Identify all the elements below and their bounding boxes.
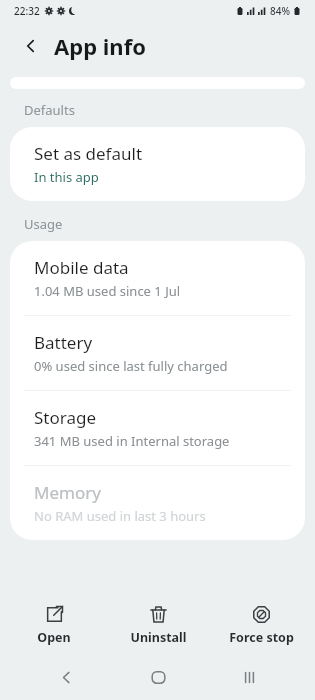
staticText: 0% used since last fully charged [34, 357, 228, 375]
staticText: In this app [34, 168, 99, 186]
staticText: 22:32 [14, 4, 40, 18]
staticText: 84% [270, 4, 290, 18]
staticText: Force stop [229, 629, 294, 646]
button[interactable]: Back [40, 654, 92, 700]
staticText: Set as default [34, 142, 143, 165]
staticText: App info [54, 31, 146, 61]
button[interactable]: Back [14, 29, 48, 63]
staticText: Defaults [24, 101, 75, 119]
button[interactable]: Memory [10, 466, 305, 540]
staticText: Mobile data [34, 256, 129, 279]
button[interactable]: Storage [10, 391, 305, 465]
button[interactable]: Force stop [211, 601, 311, 650]
staticText: Memory [34, 481, 101, 504]
button[interactable]: Home [132, 654, 184, 700]
staticText: Battery [34, 331, 93, 354]
staticText: Uninstall [130, 629, 187, 646]
button[interactable]: Recent apps [223, 654, 275, 700]
staticText: Open [37, 629, 71, 646]
staticText: Storage [34, 406, 97, 429]
button[interactable]: Uninstall [108, 601, 208, 650]
button[interactable]: Mobile data [10, 241, 305, 315]
staticText: No RAM used in last 3 hours [34, 507, 206, 525]
button[interactable]: Battery [10, 316, 305, 390]
button[interactable]: Open [4, 601, 104, 650]
staticText: 1.04 MB used since 1 Jul [34, 282, 181, 300]
staticText: 341 MB used in Internal storage [34, 432, 230, 450]
button[interactable]: Set as default [10, 127, 305, 201]
staticText: Usage [24, 215, 63, 233]
